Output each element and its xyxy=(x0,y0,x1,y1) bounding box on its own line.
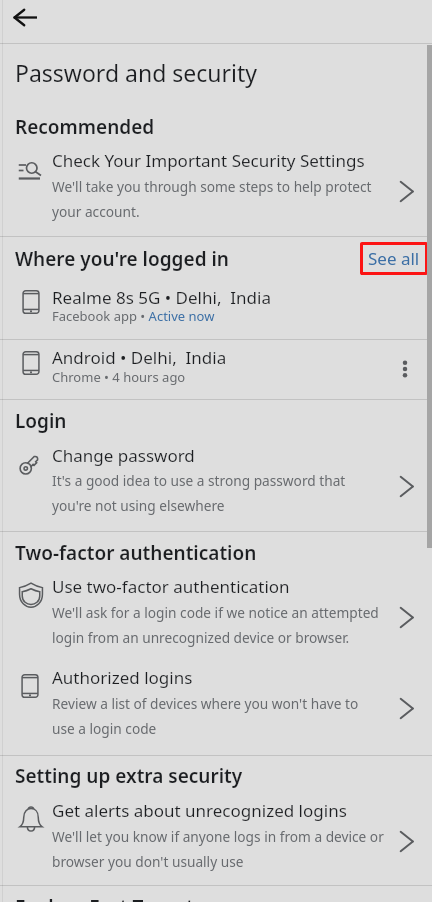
staticText: Login xyxy=(15,408,67,434)
button[interactable] xyxy=(0,143,432,227)
staticText: Recommended xyxy=(15,114,155,140)
button[interactable]: More options xyxy=(390,354,419,383)
button[interactable] xyxy=(0,438,432,521)
staticText: Explore Fast Two-step xyxy=(15,894,217,902)
staticText: Authorized logins xyxy=(52,666,193,689)
button[interactable]: See all xyxy=(360,242,428,275)
staticText: Realme 8s 5G • Delhi, India xyxy=(52,286,271,309)
button[interactable] xyxy=(0,569,432,653)
staticText: It's a good idea to use a strong passwor… xyxy=(52,471,386,515)
staticText: Chrome • 4 hours ago xyxy=(52,368,186,386)
staticText: Android • Delhi, India xyxy=(52,346,227,369)
staticText: Change password xyxy=(52,444,195,467)
staticText: Password and security xyxy=(15,57,257,88)
staticText: See all xyxy=(368,247,420,270)
staticText: We'll take you through some steps to hel… xyxy=(52,177,386,221)
staticText: Setting up extra security xyxy=(15,763,243,789)
staticText: We'll let you know if anyone logs in fro… xyxy=(52,827,386,871)
staticText: Get alerts about unrecognized logins xyxy=(52,799,347,822)
staticText: Review a list of devices where you won't… xyxy=(52,694,372,738)
staticText: Two-factor authentication xyxy=(15,540,257,566)
button[interactable]: Back xyxy=(7,0,43,35)
button[interactable] xyxy=(0,660,432,744)
staticText: We'll ask for a login code if we notice … xyxy=(52,603,386,647)
staticText: Where you're logged in xyxy=(15,246,229,272)
staticText: Facebook app • Active now xyxy=(52,307,215,325)
staticText: Check Your Important Security Settings xyxy=(52,149,365,172)
button[interactable] xyxy=(0,280,432,330)
button[interactable] xyxy=(0,793,432,877)
staticText: Use two-factor authentication xyxy=(52,575,290,598)
